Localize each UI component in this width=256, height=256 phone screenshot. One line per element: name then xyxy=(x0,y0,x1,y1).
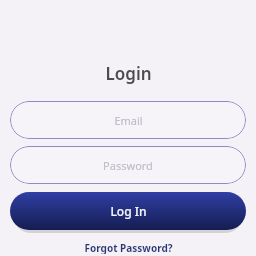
staticText: Email xyxy=(114,113,143,128)
staticText: Log In xyxy=(110,203,147,219)
button[interactable]: Password xyxy=(10,146,246,184)
staticText: Password xyxy=(103,158,153,173)
button[interactable]: Email xyxy=(10,101,246,139)
button[interactable]: Forgot Password? xyxy=(80,239,177,256)
button[interactable]: Log In xyxy=(10,192,246,230)
staticText: Login xyxy=(105,62,152,85)
staticText: Forgot Password? xyxy=(84,241,173,254)
